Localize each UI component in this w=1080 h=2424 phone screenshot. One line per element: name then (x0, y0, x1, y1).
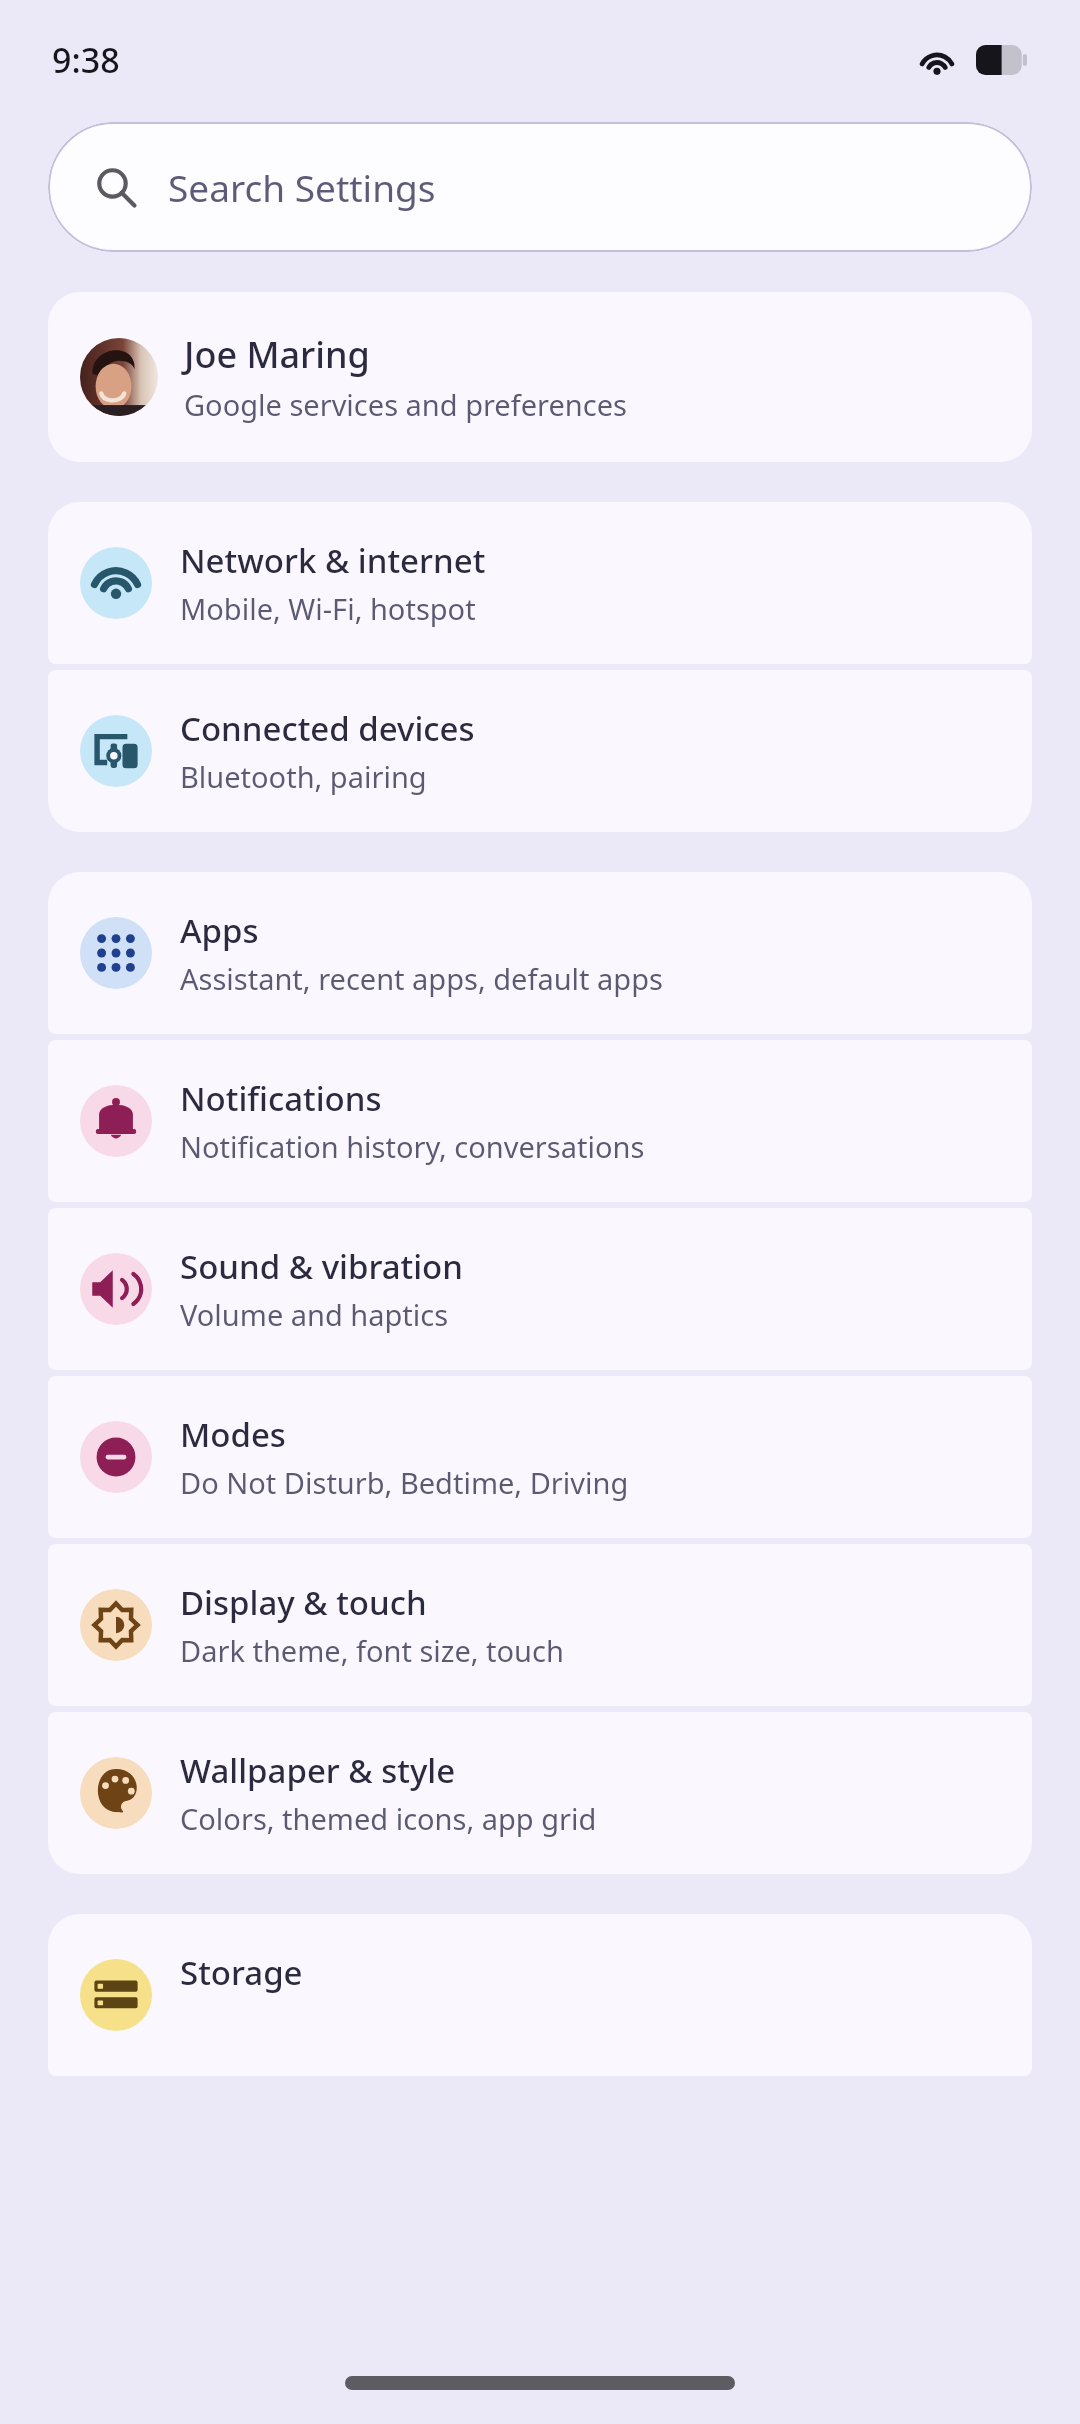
staticText: Colors, themed icons, app grid (180, 1799, 597, 1838)
button[interactable]: Sound & vibration (48, 1208, 1032, 1370)
staticText: Network & internet (180, 538, 486, 583)
staticText: Joe Maring (184, 330, 370, 379)
button[interactable]: Network & internet (48, 502, 1032, 664)
button[interactable]: Modes (48, 1376, 1032, 1538)
staticText: Mobile, Wi-Fi, hotspot (180, 589, 476, 628)
button[interactable]: Apps (48, 872, 1032, 1034)
button[interactable]: Joe Maring (48, 292, 1032, 462)
staticText: Volume and haptics (180, 1295, 449, 1334)
button[interactable]: Storage (48, 1914, 1032, 2076)
staticText: Notifications (180, 1076, 382, 1121)
staticText: Wallpaper & style (180, 1748, 456, 1793)
staticText: Storage (180, 1950, 303, 1995)
staticText: Modes (180, 1412, 286, 1457)
button[interactable]: Notifications (48, 1040, 1032, 1202)
staticText: Do Not Disturb, Bedtime, Driving (180, 1463, 629, 1502)
staticText: Assistant, recent apps, default apps (180, 959, 663, 998)
staticText: Sound & vibration (180, 1244, 463, 1289)
staticText: Apps (180, 908, 259, 953)
button[interactable]: Wallpaper & style (48, 1712, 1032, 1874)
staticText: Dark theme, font size, touch (180, 1631, 564, 1670)
staticText: Notification history, conversations (180, 1127, 645, 1166)
button[interactable]: Connected devices (48, 670, 1032, 832)
staticText: Bluetooth, pairing (180, 757, 427, 796)
staticText: Google services and preferences (184, 385, 627, 424)
staticText: Display & touch (180, 1580, 427, 1625)
button[interactable]: Display & touch (48, 1544, 1032, 1706)
staticText: Search Settings (168, 162, 436, 212)
staticText: 9:38 (52, 37, 120, 83)
button[interactable]: Search Settings (48, 122, 1032, 252)
staticText: Connected devices (180, 706, 475, 751)
